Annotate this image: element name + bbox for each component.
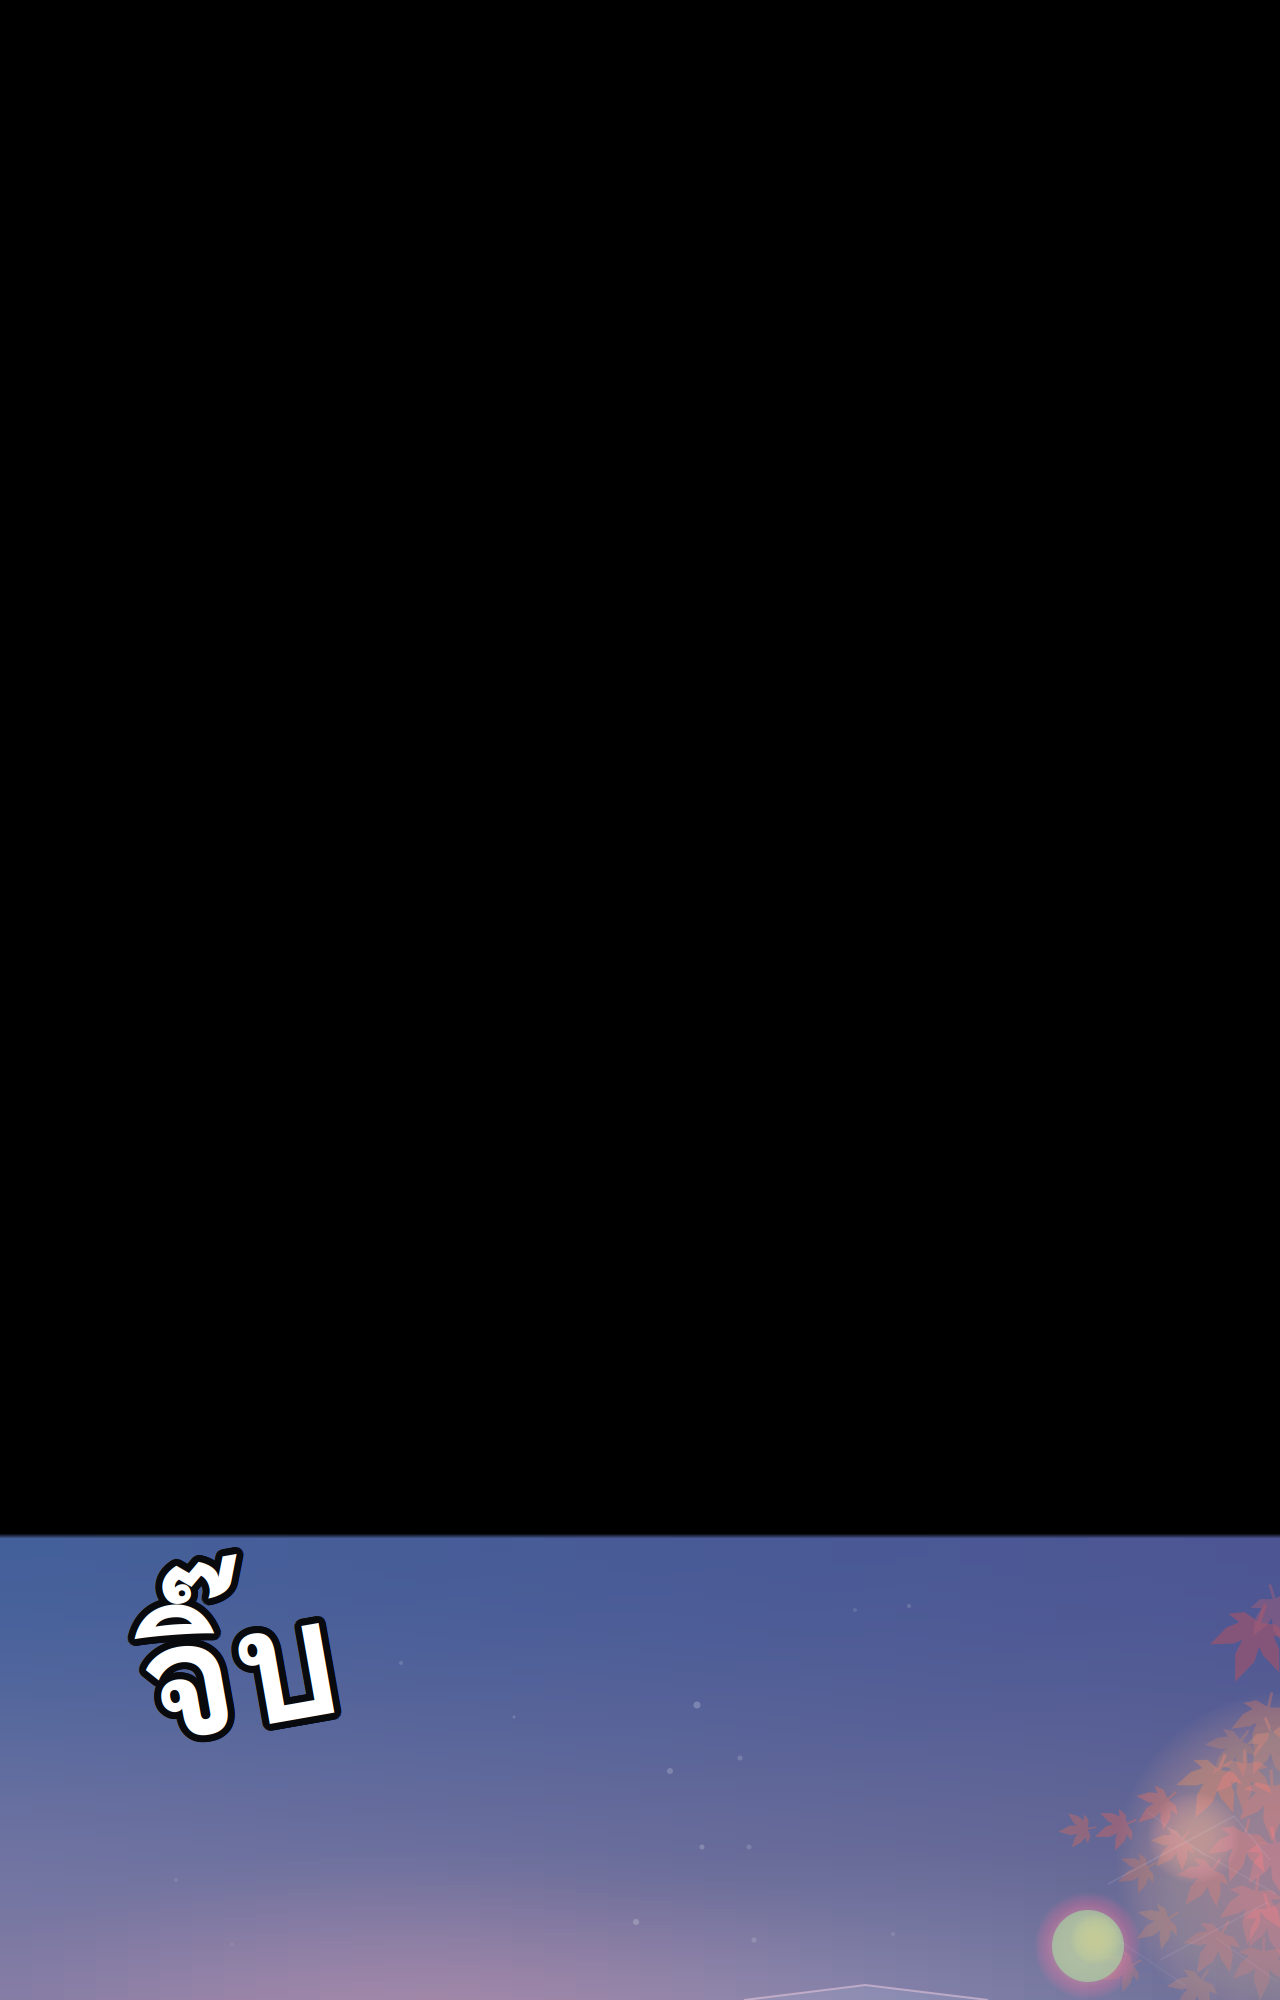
staticText: จิ๊บ [139,1546,337,1798]
staticText: จิ๊บ [139,1551,337,1803]
staticText: จิ๊บ [143,1541,341,1793]
staticText: จิ๊บ [139,1549,337,1801]
staticText: จิ๊บ [141,1544,339,1796]
staticText: จิ๊บ [135,1547,333,1799]
staticText: จิ๊บ [139,1539,337,1791]
staticText: จิ๊บ [139,1542,337,1794]
staticText: จิ๊บ [139,1544,337,1796]
staticText: จิ๊บ [145,1547,343,1799]
staticText: จิ๊บ [136,1550,334,1802]
staticText: จิ๊บ [137,1545,335,1797]
staticText: จิ๊บ [135,1541,333,1793]
staticText: จิ๊บ [143,1545,341,1797]
staticText: จิ๊บ [141,1537,339,1789]
staticText: จิ๊บ [132,1544,330,1796]
staticText: จิ๊บ [138,1546,336,1798]
button[interactable]: Show reader controls [0,0,1280,2000]
staticText: จิ๊บ [145,1541,343,1793]
staticText: จิ๊บ [144,1544,342,1796]
staticText: จิ๊บ [141,1545,339,1797]
staticText: จิ๊บ [133,1547,331,1799]
staticText: จิ๊บ [140,1548,338,1800]
staticText: จิ๊บ [142,1540,340,1792]
staticText: จิ๊บ [142,1550,340,1802]
staticText: จิ๊บ [138,1548,336,1800]
staticText: จิ๊บ [136,1538,334,1790]
staticText: จิ๊บ [140,1540,338,1792]
staticText: จิ๊บ [135,1549,333,1801]
staticText: จิ๊บ [137,1551,335,1803]
staticText: จิ๊บ [136,1540,334,1792]
staticText: จิ๊บ [141,1543,339,1795]
staticText: จิ๊บ [135,1545,333,1797]
staticText: จิ๊บ [132,1542,330,1794]
staticText: จิ๊บ [137,1544,335,1796]
staticText: จิ๊บ [136,1548,334,1800]
staticText: จิ๊บ [143,1542,341,1795]
staticText: จิ๊บ [138,1542,336,1794]
staticText: จิ๊บ [140,1542,338,1794]
staticText: จิ๊บ [142,1538,340,1790]
staticText: จิ๊บ [134,1544,332,1796]
staticText: จิ๊บ [146,1544,344,1796]
staticText: จิ๊บ [142,1548,340,1800]
staticText: จิ๊บ [132,1545,330,1798]
staticText: จิ๊บ [140,1546,338,1798]
staticText: จิ๊บ [141,1551,339,1803]
staticText: จิ๊บ [133,1548,331,1800]
staticText: จิ๊บ [137,1537,335,1789]
staticText: จิ๊บ [143,1549,341,1801]
staticText: จิ๊บ [138,1540,336,1792]
staticText: จิ๊บ [135,1538,333,1791]
staticText: จิ๊บ [146,1542,344,1794]
staticText: จิ๊บ [144,1540,342,1792]
staticText: จิ๊บ [143,1538,341,1791]
staticText: จิ๊บ [139,1537,337,1789]
staticText: จิ๊บ [133,1540,331,1792]
staticText: จิ๊บ [146,1545,344,1798]
staticText: จิ๊บ [133,1541,331,1793]
staticText: จิ๊บ [137,1543,335,1795]
staticText: จิ๊บ [135,1542,333,1795]
staticText: จิ๊บ [144,1548,342,1800]
staticText: จิ๊บ [143,1547,341,1799]
